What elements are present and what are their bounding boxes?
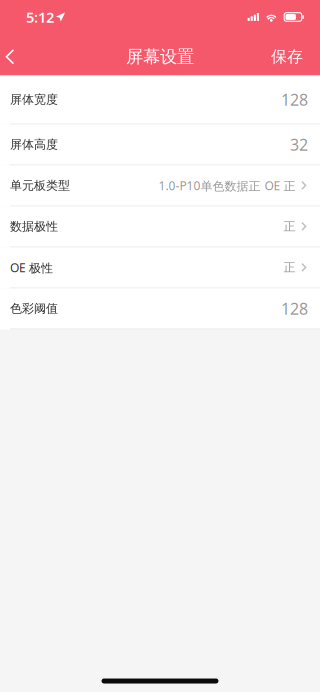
staticText: 屏幕设置 [126,46,194,67]
staticText: 32 [290,134,308,155]
staticText: 保存 [271,47,303,67]
button[interactable]: 色彩阈值 [0,288,320,329]
staticText: 色彩阈值 [10,301,58,316]
staticText: 数据极性 [10,219,58,234]
button[interactable]: Back [0,38,60,75]
staticText: 正 [283,260,295,275]
staticText: 128 [281,89,308,110]
button[interactable]: 保存 [260,38,320,75]
button[interactable]: 数据极性 [0,206,320,247]
staticText: 128 [281,298,308,319]
staticText: 屏体高度 [10,137,58,152]
staticText: 屏体宽度 [10,92,58,107]
button[interactable]: 单元板类型 [0,165,320,206]
staticText: OE 极性 [10,259,53,275]
staticText: 1.0-P10单色数据正 OE 正 [158,177,295,193]
staticText: 单元板类型 [10,178,70,193]
staticText: 正 [283,219,295,234]
button[interactable]: 屏体宽度 [0,75,320,124]
button[interactable]: 屏体高度 [0,124,320,165]
button[interactable]: OE 极性 [0,247,320,288]
staticText: 5:12 [26,7,54,27]
